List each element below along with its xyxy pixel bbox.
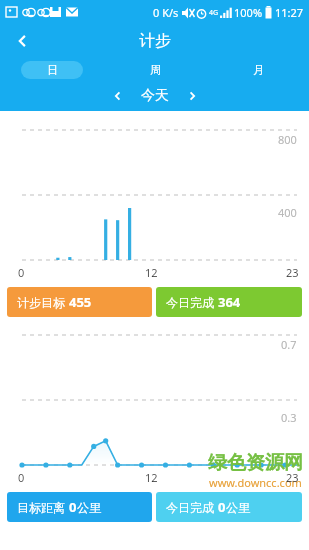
staticText: 今日完成 <box>166 499 218 515</box>
staticText: 0 <box>218 498 226 516</box>
staticText: 0 <box>18 265 25 280</box>
staticText: 800 <box>278 132 297 147</box>
staticText: 12 <box>145 470 158 485</box>
staticText: 455 <box>69 293 92 311</box>
staticText: 绿色资源网 <box>208 451 303 475</box>
staticText: 计步目标 <box>17 294 69 310</box>
staticText: 11:27 <box>275 5 304 20</box>
staticText: www.downcc.com <box>209 475 302 490</box>
staticText: 23 <box>286 470 299 485</box>
button[interactable]: 今天 <box>131 87 179 105</box>
button[interactable]: 目标距离 <box>7 492 152 522</box>
staticText: 0 K/s <box>153 5 179 20</box>
staticText: 周 <box>150 63 161 77</box>
staticText: 公里 <box>77 500 101 515</box>
staticText: 0 <box>18 470 25 485</box>
button[interactable]: 周 <box>103 57 206 83</box>
staticText: 400 <box>278 205 297 220</box>
staticText: 0.7 <box>281 337 297 352</box>
staticText: 计步 <box>139 31 171 51</box>
button[interactable]: 日 <box>0 57 103 83</box>
staticText: 0 <box>69 498 77 516</box>
button[interactable]: 月 <box>206 57 309 83</box>
staticText: 月 <box>253 63 264 77</box>
staticText: 公里 <box>226 500 250 515</box>
button[interactable]: Next day <box>179 83 205 109</box>
button[interactable]: Back <box>8 26 38 56</box>
staticText: 12 <box>145 265 158 280</box>
button[interactable]: 计步目标 <box>7 287 152 317</box>
staticText: 今天 <box>141 87 169 105</box>
staticText: 0.3 <box>281 410 297 425</box>
staticText: 4G <box>209 8 219 18</box>
staticText: 23 <box>286 265 299 280</box>
staticText: 364 <box>218 293 241 311</box>
staticText: 目标距离 <box>17 499 69 515</box>
staticText: 100% <box>234 5 263 20</box>
button[interactable]: 今日完成 <box>156 492 302 522</box>
staticText: 日 <box>47 63 58 77</box>
button[interactable]: Previous day <box>105 83 131 109</box>
button[interactable]: 今日完成 <box>156 287 302 317</box>
staticText: 今日完成 <box>166 294 218 310</box>
